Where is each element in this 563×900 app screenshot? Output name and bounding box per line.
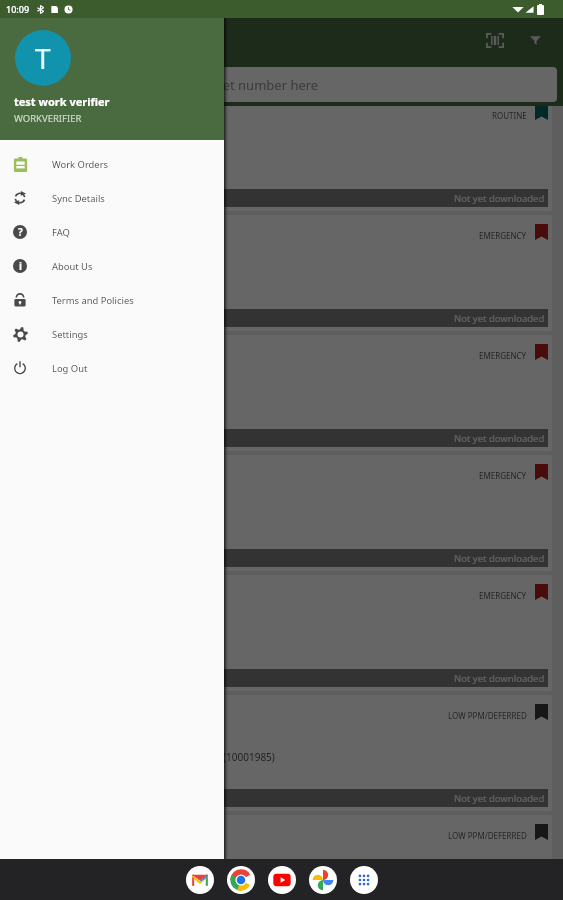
button[interactable]: Log Out [0,351,224,385]
button[interactable]: Scan the barcode or enter the asset numb… [7,67,557,102]
staticText: EMERGENCY [479,230,527,241]
staticText: Pump station [15,128,86,143]
staticText: Log Out [52,362,88,375]
staticText: Roof plant [15,848,70,863]
button[interactable]: Chrome [227,866,255,894]
staticText: Work Orders [52,158,109,171]
staticText: Not yet downloaded [454,672,545,685]
button[interactable]: All apps [350,866,378,894]
staticText: EMERGENCY [479,590,527,601]
staticText: EMERGENCY [479,470,527,481]
button[interactable]: Work Orders [0,147,224,181]
button[interactable]: Photos [309,866,337,894]
staticText: 10:09 [6,3,30,15]
staticText: Planned preventive maintenance inspectio… [15,750,275,764]
staticText: Not yet downloaded [454,552,545,565]
staticText: Not yet downloaded [454,792,545,805]
button[interactable]: YouTube [268,866,296,894]
button[interactable]: Sync Details [0,181,224,215]
staticText: Scan the barcode or enter the asset numb… [18,76,319,94]
staticText: i [19,259,22,273]
staticText: T [35,39,51,77]
staticText: Boiler room [15,248,77,263]
staticText: Not yet downloaded [454,432,545,445]
staticText: ROUTINE [492,110,527,121]
button[interactable]: i [0,249,224,283]
staticText: EMERGENCY [479,350,527,361]
button[interactable]: Settings [0,317,224,351]
button[interactable]: Filter [516,21,554,59]
staticText: Not yet downloaded [454,192,545,205]
staticText: Leak repair [15,270,68,284]
staticText: LOW PPM/DEFERRED [448,710,527,721]
staticText: ? [18,225,23,239]
staticText: About Us [52,260,93,273]
staticText: Sync Details [52,192,105,205]
button[interactable]: Terms and Policies [0,283,224,317]
staticText: FAQ [52,226,70,239]
button[interactable]: EMERGENCY [3,455,552,571]
staticText: Terms and Policies [52,294,134,307]
button[interactable]: ? [0,215,224,249]
staticText: Site check [15,150,62,164]
staticText: test work verifier [14,94,110,109]
button[interactable]: EMERGENCY [3,215,552,331]
button[interactable]: Scan barcode [476,21,514,59]
staticText: Settings [52,328,88,341]
staticText: WORKVERIFIER [14,112,82,125]
button[interactable]: EMERGENCY [3,575,552,691]
button[interactable]: Gmail [186,866,214,894]
button[interactable]: LOW PPM/DEFERRED [3,695,552,811]
button[interactable]: LOW PPM/DEFERRED [3,815,552,885]
staticText: LOW PPM/DEFERRED [448,830,527,841]
staticText: Chiller unit [15,368,73,383]
button[interactable]: ROUTINE [3,106,552,211]
staticText: Not yet downloaded [454,312,545,325]
button[interactable]: Open navigation drawer [12,23,46,57]
button[interactable]: EMERGENCY [3,335,552,451]
